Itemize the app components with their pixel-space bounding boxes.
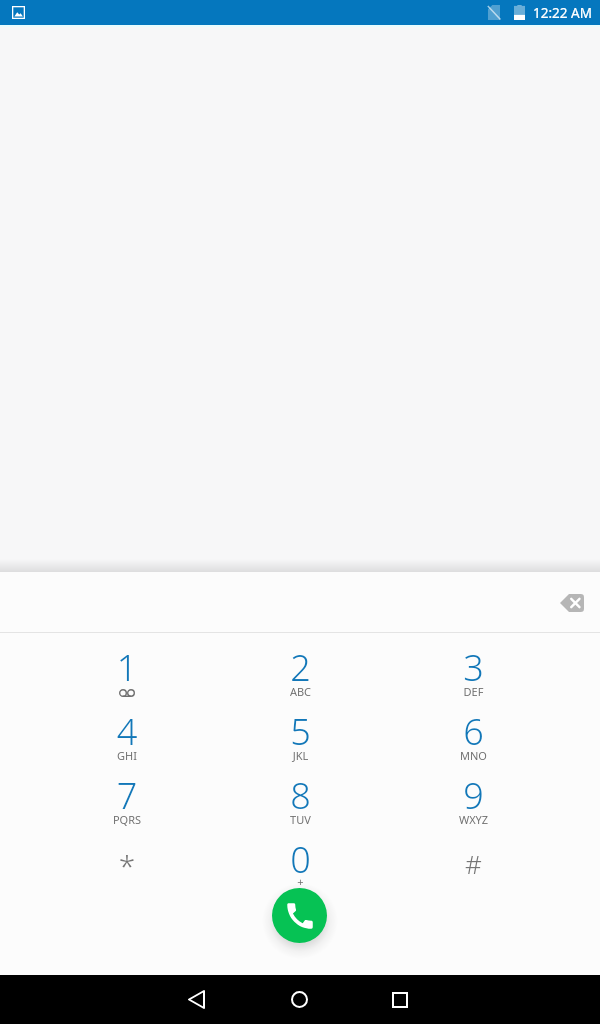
button[interactable]: Back (166, 975, 226, 1024)
button[interactable]: Home (269, 975, 329, 1024)
staticText: PQRS (40, 812, 214, 827)
staticText: # (387, 846, 560, 881)
button[interactable]: Call (272, 888, 327, 943)
staticText: WXYZ (387, 812, 560, 827)
button[interactable]: 9 (387, 780, 560, 844)
staticText: 12:22 AM (533, 4, 592, 22)
other: Battery (514, 5, 525, 20)
staticText: 9 (387, 771, 560, 820)
staticText: 5 (214, 707, 387, 756)
button[interactable]: 0 (214, 844, 387, 908)
button[interactable]: 1 (40, 652, 214, 716)
staticText: TUV (214, 812, 387, 827)
staticText: 8 (214, 771, 387, 820)
other: Screenshot (12, 6, 25, 19)
staticText: 1 (40, 643, 214, 692)
staticText: JKL (214, 748, 387, 763)
button[interactable]: 6 (387, 716, 560, 780)
staticText: 4 (40, 707, 214, 756)
button[interactable]: 3 (387, 652, 560, 716)
staticText: 2 (214, 643, 387, 692)
staticText: MNO (387, 748, 560, 763)
button[interactable]: 4 (40, 716, 214, 780)
button[interactable]: # (387, 844, 560, 908)
button[interactable]: 5 (214, 716, 387, 780)
staticText: + (214, 874, 387, 889)
staticText: 0 (214, 835, 387, 884)
other: No SIM card (487, 5, 501, 20)
button[interactable]: 7 (40, 780, 214, 844)
button[interactable]: Backspace (553, 584, 591, 622)
button[interactable]: 2 (214, 652, 387, 716)
staticText: 7 (40, 771, 214, 820)
staticText: 3 (387, 643, 560, 692)
staticText: GHI (40, 748, 214, 763)
staticText: 6 (387, 707, 560, 756)
staticText: * (40, 845, 214, 886)
staticText: DEF (387, 684, 560, 699)
button[interactable]: 8 (214, 780, 387, 844)
staticText: ABC (214, 684, 387, 699)
button[interactable]: * (40, 844, 214, 908)
button[interactable]: Recents (370, 975, 430, 1024)
